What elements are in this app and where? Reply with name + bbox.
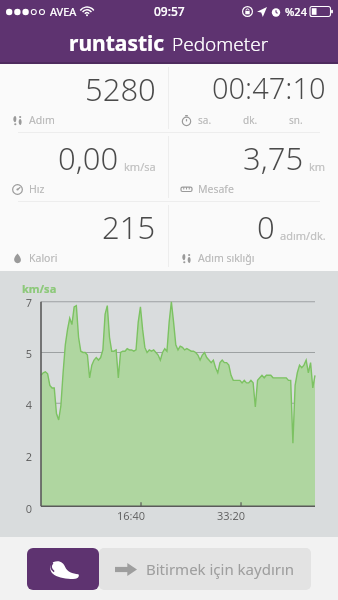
staticText: 00:47:10 bbox=[212, 68, 326, 107]
staticText: Adım sıklığı bbox=[198, 251, 255, 265]
staticText: runtastic bbox=[69, 29, 165, 58]
staticText: Adım bbox=[29, 113, 55, 127]
staticText: 215 bbox=[102, 206, 156, 248]
staticText: sa. bbox=[198, 113, 212, 127]
staticText: Mesafe bbox=[198, 182, 234, 196]
staticText: 16:40 bbox=[117, 508, 146, 523]
staticText: 0 bbox=[25, 501, 32, 516]
staticText: km/sa bbox=[22, 281, 57, 296]
staticText: AVEA bbox=[50, 4, 77, 19]
staticText: sn. bbox=[289, 113, 303, 127]
staticText: 4 bbox=[25, 397, 32, 412]
staticText: Kalori bbox=[29, 251, 58, 265]
button[interactable]: 215 bbox=[0, 202, 168, 270]
staticText: %24 bbox=[285, 4, 307, 19]
button[interactable]: 0 bbox=[169, 202, 338, 270]
staticText: 2 bbox=[25, 449, 32, 464]
staticText: 0,00 bbox=[58, 137, 119, 179]
staticText: Hız bbox=[29, 182, 45, 196]
staticText: 3,75 bbox=[243, 137, 304, 179]
staticText: 33:20 bbox=[217, 508, 246, 523]
staticText: 5 bbox=[25, 346, 32, 361]
staticText: dk. bbox=[243, 113, 258, 127]
staticText: Bitirmek için kaydırın bbox=[146, 559, 295, 579]
button[interactable]: 5280 bbox=[0, 64, 168, 132]
button[interactable]: 3,75 bbox=[169, 133, 338, 201]
button[interactable]: Bitirmek için kaydırın bbox=[99, 548, 311, 590]
button[interactable]: 0,00 bbox=[0, 133, 168, 201]
staticText: 5280 bbox=[85, 68, 156, 110]
staticText: Pedometer bbox=[172, 31, 269, 57]
staticText: km/sa bbox=[124, 159, 156, 174]
staticText: adım/dk. bbox=[280, 228, 326, 243]
button[interactable]: 00:47:10 bbox=[169, 64, 338, 132]
staticText: km bbox=[309, 159, 326, 174]
staticText: 7 bbox=[25, 295, 32, 310]
staticText: 09:57 bbox=[154, 3, 185, 19]
staticText: 0 bbox=[257, 206, 275, 248]
button[interactable]: Start tracking bbox=[27, 548, 99, 590]
